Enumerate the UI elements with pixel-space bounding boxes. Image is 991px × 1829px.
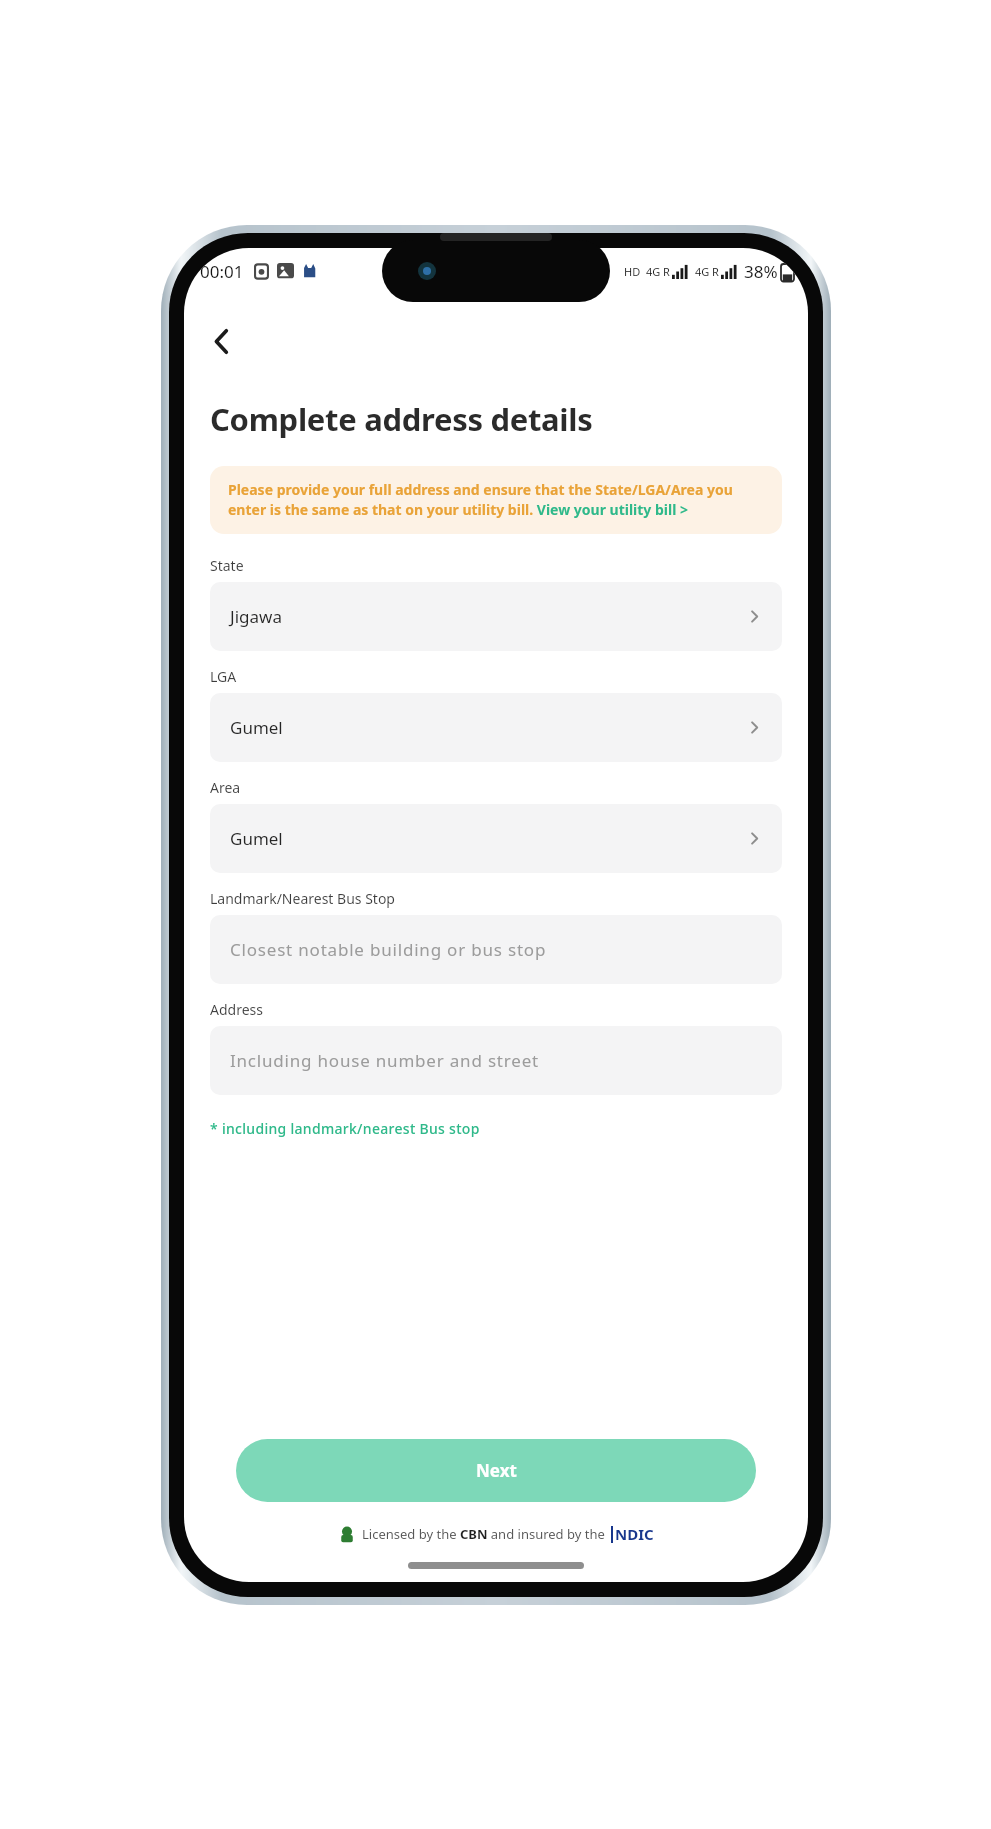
staticText: Closest notable building or bus stop — [230, 938, 547, 961]
button[interactable]: Gumel — [210, 804, 782, 873]
button[interactable]: Back — [194, 314, 248, 368]
staticText: Please provide your full address and ens… — [228, 480, 764, 520]
staticText: Address — [210, 1000, 263, 1019]
staticText: Landmark/Nearest Bus Stop — [210, 889, 395, 908]
staticText: Complete address details — [210, 398, 593, 440]
button[interactable]: Please provide your full address and ens… — [210, 466, 782, 534]
staticText: Licensed by the CBN and insured by the — [362, 1525, 609, 1543]
staticText: NDIC — [615, 1524, 654, 1544]
staticText: 4G — [695, 264, 710, 279]
button[interactable]: Gumel — [210, 693, 782, 762]
button[interactable]: Next — [236, 1439, 756, 1502]
staticText: 00:01 — [200, 260, 244, 283]
staticText: Next — [476, 1459, 517, 1482]
button[interactable]: Closest notable building or bus stop — [210, 915, 782, 984]
staticText: Including house number and street — [230, 1049, 539, 1072]
staticText: HD — [624, 264, 641, 279]
staticText: R — [712, 264, 719, 279]
staticText: R — [663, 264, 670, 279]
staticText: * including landmark/nearest Bus stop — [210, 1119, 480, 1138]
button[interactable]: Including house number and street — [210, 1026, 782, 1095]
staticText: 38% — [744, 260, 778, 283]
staticText: 4G — [646, 264, 661, 279]
staticText: State — [210, 556, 244, 575]
button[interactable]: Jigawa — [210, 582, 782, 651]
staticText: Area — [210, 778, 241, 797]
staticText: LGA — [210, 667, 237, 686]
staticText: Gumel — [230, 827, 283, 850]
staticText: Jigawa — [230, 605, 282, 628]
staticText: Gumel — [230, 716, 283, 739]
